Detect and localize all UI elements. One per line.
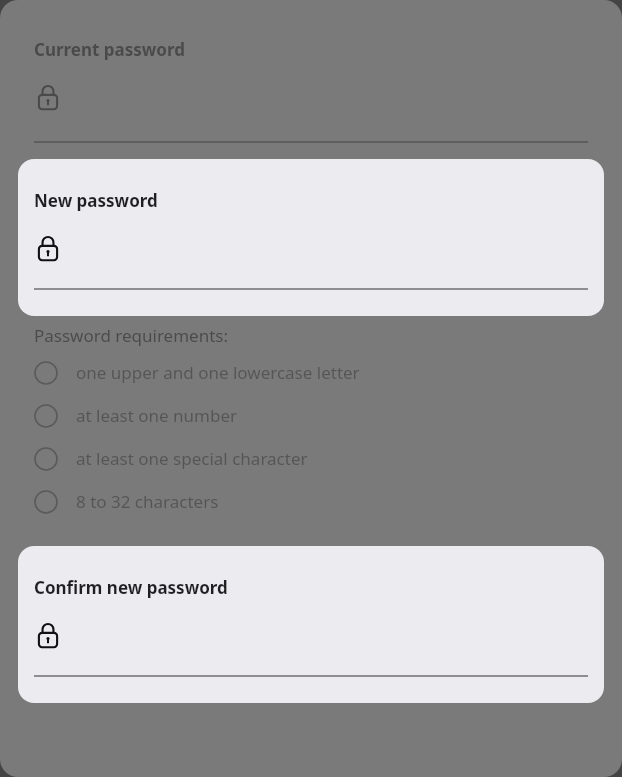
button[interactable]: one upper and one lowercase letter [34,351,588,394]
button[interactable]: Current password [34,38,588,143]
staticText: one upper and one lowercase letter [76,361,360,384]
button[interactable]: at least one number [34,394,588,437]
staticText: Confirm new password [34,576,228,599]
staticText: at least one special character [76,447,308,470]
button[interactable]: at least one special character [34,437,588,480]
staticText: Current password [34,38,185,61]
staticText: at least one number [76,404,238,427]
staticText: Password requirements: [34,324,229,347]
button[interactable]: Confirm new password [18,546,604,703]
staticText: 8 to 32 characters [76,490,219,513]
button[interactable]: New password [18,159,604,316]
button[interactable]: 8 to 32 characters [34,480,588,523]
staticText: New password [34,189,158,212]
